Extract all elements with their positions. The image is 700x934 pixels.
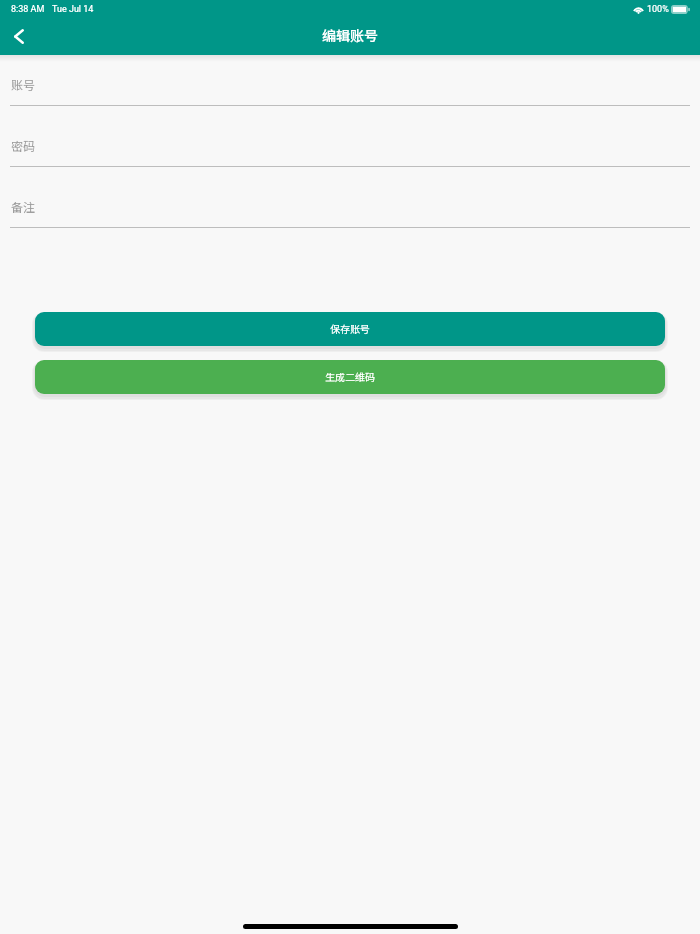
staticText: 8:38 AM xyxy=(11,4,45,15)
staticText: 100% xyxy=(647,4,669,15)
staticText: 编辑账号 xyxy=(322,25,378,45)
staticText: 生成二维码 xyxy=(325,369,375,383)
staticText: 保存账号 xyxy=(330,321,370,335)
button[interactable]: 账号 xyxy=(0,69,700,105)
staticText: 密码 xyxy=(11,137,36,154)
button[interactable]: 生成二维码 xyxy=(35,360,665,394)
staticText: 账号 xyxy=(11,76,36,93)
button[interactable]: 密码 xyxy=(0,130,700,166)
button[interactable]: 备注 xyxy=(0,191,700,227)
button[interactable]: 保存账号 xyxy=(35,312,665,346)
staticText: 备注 xyxy=(11,198,36,215)
button[interactable]: Back xyxy=(0,19,42,55)
staticText: Tue Jul 14 xyxy=(52,4,94,15)
